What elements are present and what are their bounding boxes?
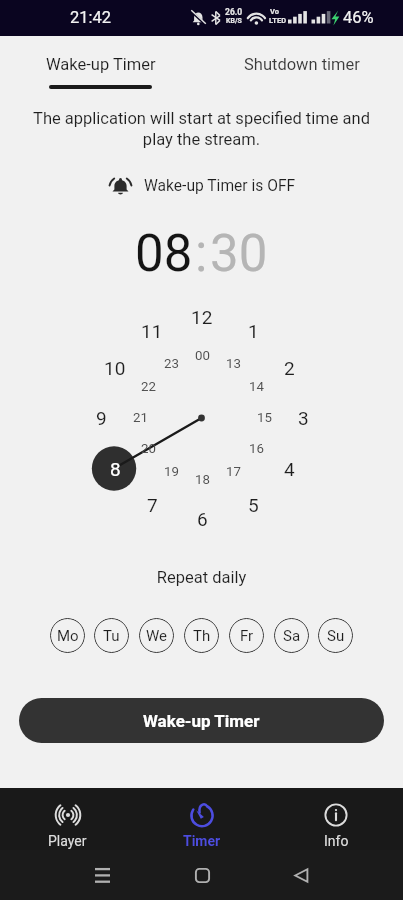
staticText: 23	[164, 356, 179, 372]
button[interactable]: 19	[159, 460, 183, 484]
staticText: Th	[193, 627, 211, 645]
button[interactable]: 14	[244, 375, 268, 399]
button[interactable]: Info	[269, 788, 403, 850]
button[interactable]: 11	[137, 316, 167, 346]
staticText: 13	[226, 356, 241, 372]
button[interactable]: 00	[190, 344, 214, 368]
button[interactable]: Back	[285, 859, 317, 891]
other: Player	[55, 802, 81, 828]
staticText: 18	[195, 472, 210, 488]
button[interactable]: 16	[244, 437, 268, 461]
other: Info	[323, 802, 349, 828]
staticText: 08	[135, 224, 193, 284]
button[interactable]: 7	[137, 490, 167, 520]
other: Timer	[189, 802, 215, 828]
other: Alarm	[108, 173, 133, 198]
button[interactable]: Tu	[94, 618, 129, 653]
button[interactable]: Mo	[50, 618, 85, 653]
staticText: Info	[324, 833, 349, 849]
button[interactable]: 13	[221, 352, 245, 376]
staticText: Sa	[283, 627, 301, 645]
button[interactable]: Player	[0, 788, 135, 850]
button[interactable]: 2	[274, 353, 304, 383]
staticText: 21:42	[70, 8, 112, 27]
staticText: Fr	[240, 627, 254, 645]
button[interactable]: 10	[100, 353, 130, 383]
button[interactable]: 20	[136, 437, 160, 461]
staticText: 3	[298, 407, 309, 429]
staticText: Su	[327, 627, 345, 645]
staticText: 15	[257, 410, 272, 426]
staticText: Player	[48, 833, 87, 849]
staticText: 17	[226, 464, 241, 480]
button[interactable]: Recents	[86, 859, 118, 891]
staticText: 7	[147, 494, 158, 516]
staticText: 9	[96, 407, 107, 429]
button[interactable]: 1	[238, 316, 268, 346]
staticText: 1	[248, 320, 259, 342]
button[interactable]: 23	[159, 352, 183, 376]
staticText: 22	[141, 379, 156, 395]
button[interactable]: We	[139, 618, 174, 653]
button[interactable]: Th	[184, 618, 219, 653]
button[interactable]: 3	[288, 403, 318, 433]
staticText: 14	[249, 379, 264, 395]
staticText: 5	[248, 494, 259, 516]
button[interactable]: Wake-up Timer	[19, 698, 384, 743]
button[interactable]: 15	[252, 406, 276, 430]
button[interactable]: 21	[128, 406, 152, 430]
staticText: 30	[210, 224, 268, 284]
button[interactable]: 17	[221, 460, 245, 484]
staticText: 12	[191, 306, 213, 328]
staticText: Shutdown timer	[244, 55, 360, 74]
staticText: KB/S	[226, 17, 242, 25]
staticText: 11	[141, 320, 163, 342]
button[interactable]: Timer	[135, 788, 269, 850]
staticText: 16	[249, 441, 264, 457]
staticText: 21	[133, 410, 148, 426]
button[interactable]: 18	[190, 468, 214, 492]
button[interactable]: 8	[100, 454, 130, 484]
staticText: 10	[104, 357, 126, 379]
staticText: Repeat daily	[0, 568, 403, 587]
staticText: 00	[195, 348, 210, 364]
button[interactable]: Su	[318, 618, 353, 653]
staticText: The application will start at specified …	[0, 109, 403, 149]
button[interactable]: 12	[187, 302, 217, 332]
button[interactable]: 22	[136, 375, 160, 399]
staticText: 20	[141, 441, 156, 457]
staticText: Wake-up Timer is OFF	[144, 177, 296, 195]
button[interactable]: 5	[238, 490, 268, 520]
staticText: 2	[284, 357, 295, 379]
button[interactable]: Fr	[229, 618, 264, 653]
button[interactable]: 9	[86, 403, 116, 433]
staticText: We	[146, 627, 168, 645]
button[interactable]: Home	[186, 859, 218, 891]
staticText: Wake-up Timer	[46, 55, 156, 74]
button[interactable]: Wake-up Timer	[0, 36, 201, 89]
staticText: LTED	[269, 16, 287, 25]
staticText: Vo	[270, 7, 279, 16]
button[interactable]: 6	[187, 504, 217, 534]
staticText: 19	[164, 464, 179, 480]
staticText: 26.0	[225, 7, 243, 17]
button[interactable]: Shutdown timer	[201, 36, 403, 89]
button[interactable]: Sa	[274, 618, 309, 653]
staticText: 6	[197, 508, 208, 530]
staticText: Tu	[103, 627, 120, 645]
staticText: 8	[110, 458, 121, 480]
button[interactable]: 4	[274, 454, 304, 484]
staticText: 46%	[343, 8, 374, 27]
staticText: Timer	[183, 833, 221, 849]
staticText: Mo	[57, 627, 79, 645]
staticText: :	[195, 224, 208, 284]
staticText: 4	[284, 458, 295, 480]
staticText: Wake-up Timer	[143, 711, 260, 731]
